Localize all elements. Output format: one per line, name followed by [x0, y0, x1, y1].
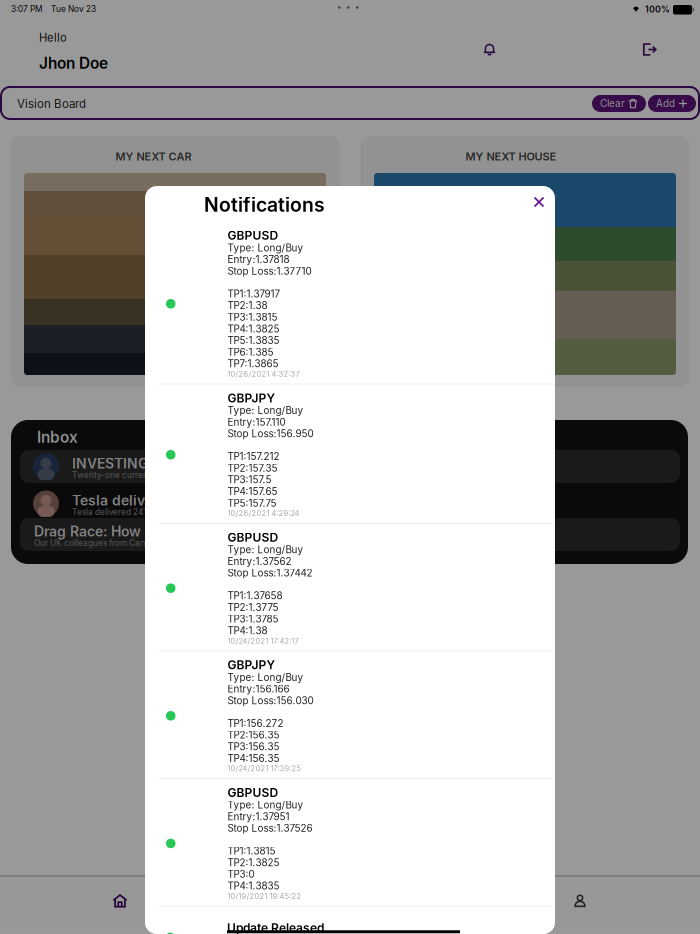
staticText: TP2:1.38 [227, 299, 267, 311]
staticText: Stop Loss:1.37710 [227, 265, 311, 277]
staticText: Add [656, 97, 675, 109]
staticText: TP2:157.35 [227, 462, 277, 474]
staticText: 3:07 PM [11, 4, 42, 14]
staticText: TP7:1.3865 [227, 358, 278, 370]
staticText: MY NEXT HOUSE [465, 150, 556, 163]
button[interactable]: Profile [520, 876, 640, 926]
button[interactable]: Close [524, 187, 554, 217]
staticText: 10/26/2021 4:29:24 [227, 509, 299, 518]
button[interactable]: Home [60, 876, 180, 926]
staticText: Notifications [204, 193, 325, 216]
staticText: TP4:1.38 [227, 625, 267, 637]
staticText: GBPUSD [227, 228, 278, 243]
staticText: Stop Loss:1.37442 [227, 567, 312, 579]
button[interactable]: Add [648, 95, 696, 112]
staticText: Jhon Doe [39, 54, 108, 73]
staticText: Hello [39, 31, 67, 45]
staticText: Update Released [227, 921, 324, 934]
staticText: TP3:1.3815 [227, 311, 277, 323]
staticText: TP5:157.75 [227, 497, 276, 509]
button[interactable]: Sign out [629, 33, 670, 66]
staticText: MY NEXT CAR [115, 150, 191, 163]
staticText: TP1:156.272 [227, 717, 283, 729]
staticText: Type: Long/Buy [227, 671, 303, 683]
staticText: 10/26/2021 4:32:37 [227, 370, 299, 379]
button[interactable]: Clear [592, 95, 646, 112]
staticText: Our UK colleagues from Carwow have come…… [34, 538, 388, 548]
staticText: Type: Long/Buy [227, 242, 303, 254]
staticText: Entry:157.110 [227, 416, 285, 428]
staticText: TP2:156.35 [227, 729, 279, 741]
staticText: Tesla delivered 241,300 electri…a would … [72, 507, 366, 517]
staticText: GBPUSD [227, 530, 278, 545]
staticText: Stop Loss:1.37526 [227, 822, 312, 834]
staticText: 100% [645, 4, 670, 15]
staticText: Clear [600, 97, 625, 109]
staticText: Twenty-one current and former…gin head o… [72, 470, 371, 480]
staticText: Tue Nov 23 [51, 4, 96, 14]
button[interactable]: Tesla delivered 241,300 electric [20, 487, 680, 520]
staticText: Type: Long/Buy [227, 544, 303, 556]
staticText: TP6:1.385 [227, 346, 273, 358]
staticText: Stop Loss:156.950 [227, 428, 313, 440]
staticText: TP3:157.5 [227, 474, 271, 486]
staticText: Entry:1.37562 [227, 555, 291, 567]
staticText: Type: Long/Buy [227, 799, 303, 811]
button[interactable]: Drag Race: How Much Faster [20, 518, 680, 551]
staticText: TP2:1.3825 [227, 857, 279, 868]
staticText: TP2:1.3775 [227, 601, 278, 613]
staticText: GBPJPY [227, 391, 275, 405]
staticText: TP4:156.35 [227, 752, 279, 764]
staticText: GBPJPY [227, 658, 275, 672]
staticText: TP4:157.65 [227, 485, 277, 497]
staticText: GBPUSD [227, 785, 278, 800]
staticText: TP3:156.35 [227, 741, 279, 753]
staticText: 10/19/2021 19:45:22 [227, 892, 301, 901]
staticText: TP1:1.3815 [227, 845, 275, 857]
staticText: Tesla delivered 241,300 electric [72, 492, 289, 509]
staticText: Vision Board [17, 97, 86, 111]
staticText: TP5:1.3835 [227, 334, 279, 346]
staticText: TP3:0 [227, 868, 254, 880]
staticText: TP4:1.3835 [227, 880, 279, 892]
staticText: Entry:1.37951 [227, 811, 289, 822]
staticText: • • • [337, 2, 360, 12]
staticText: TP1:1.37917 [227, 288, 280, 300]
staticText: 10/24/2021 17:42:17 [227, 636, 298, 645]
staticText: TP1:1.37658 [227, 590, 282, 602]
button[interactable]: INVESTING IN SPACs [20, 450, 680, 483]
staticText: Entry:1.37818 [227, 253, 289, 265]
staticText: INVESTING IN SPACs [72, 455, 216, 472]
staticText: Type: Long/Buy [227, 404, 303, 416]
staticText: Drag Race: How Much Faster [34, 523, 231, 540]
staticText: TP1:157.212 [227, 450, 279, 462]
staticText: Inbox [37, 428, 78, 447]
staticText: Stop Loss:156.030 [227, 695, 313, 707]
staticText: 10/24/2021 17:39:25 [227, 764, 301, 773]
staticText: TP3:1.3785 [227, 613, 278, 625]
button[interactable]: Notifications [469, 33, 510, 66]
staticText: TP4:1.3825 [227, 323, 279, 335]
staticText: Entry:156.166 [227, 683, 289, 695]
